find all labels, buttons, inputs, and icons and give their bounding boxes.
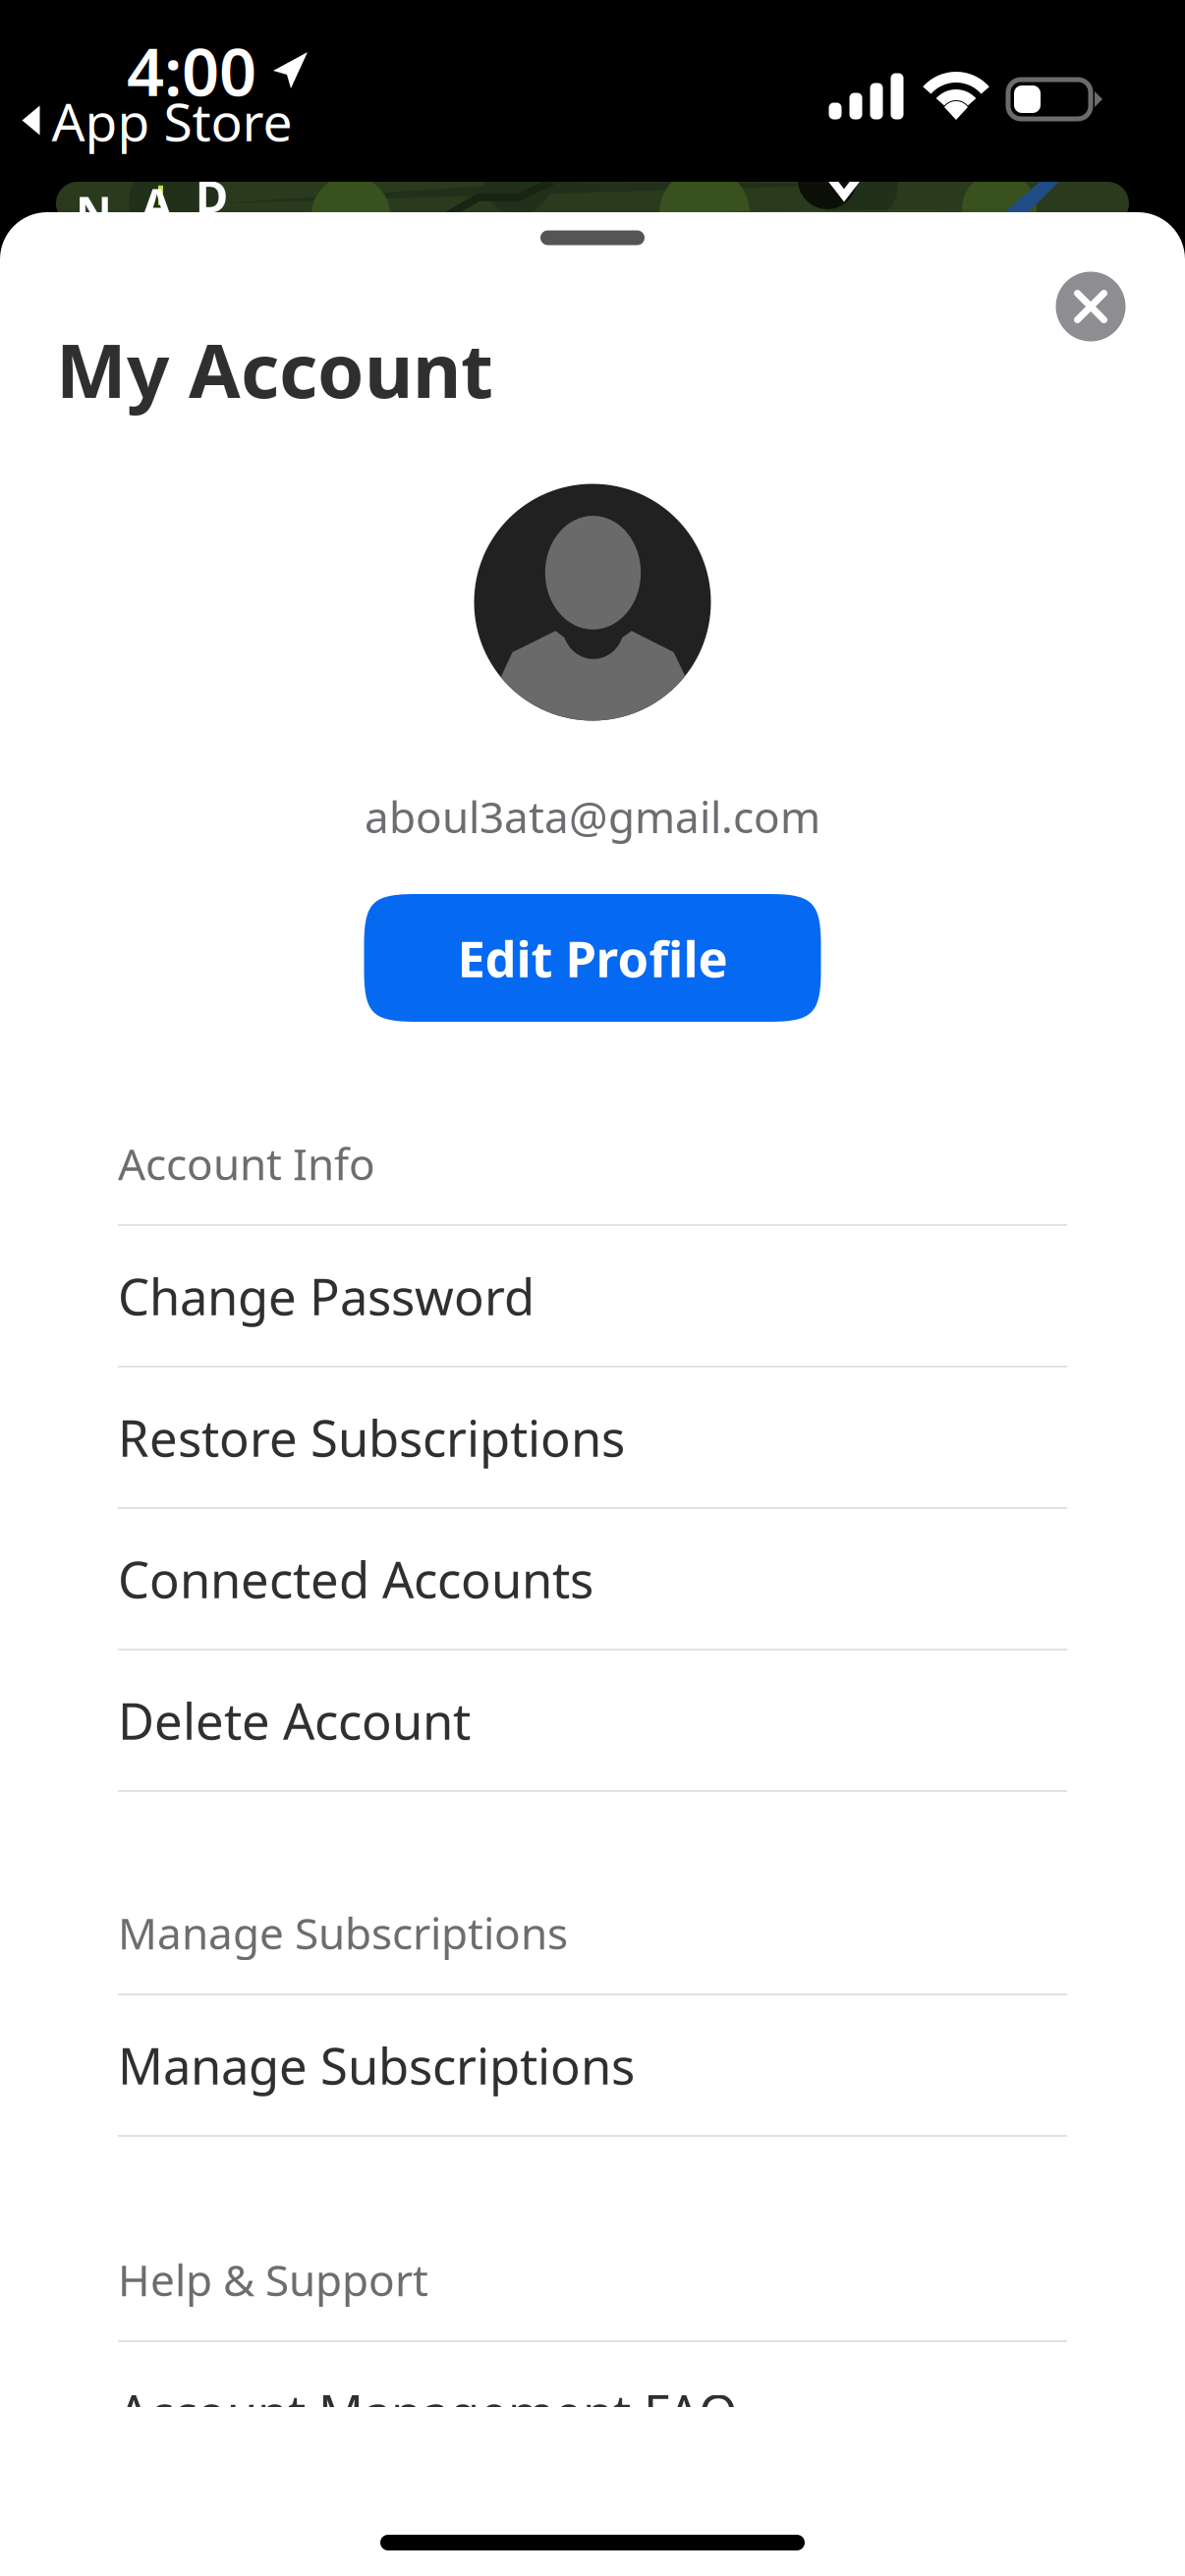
staticText: App Store <box>52 86 292 156</box>
button[interactable]: Close <box>1044 259 1138 354</box>
staticText: My Account <box>56 319 493 418</box>
staticText: Change Password <box>118 1263 535 1329</box>
staticText: Edit Profile <box>457 925 728 991</box>
staticText: Manage Subscriptions <box>118 2032 635 2098</box>
staticText: aboul3ata@gmail.com <box>365 788 820 845</box>
button[interactable]: Connected Accounts <box>118 1509 1067 1649</box>
staticText: Connected Accounts <box>118 1546 593 1612</box>
button[interactable]: Account Management FAQ <box>118 2342 1067 2482</box>
button[interactable]: Delete Account <box>118 1651 1067 1790</box>
staticText: Manage Subscriptions <box>118 1904 568 1961</box>
staticText: Account Info <box>118 1135 375 1192</box>
button[interactable]: Manage Subscriptions <box>118 1995 1067 2135</box>
button[interactable]: Edit Profile <box>364 894 821 1022</box>
staticText: N <box>76 182 112 241</box>
staticText: Account Management FAQ <box>118 2379 738 2445</box>
staticText: A <box>141 174 172 233</box>
button[interactable]: Restore Subscriptions <box>118 1368 1067 1507</box>
staticText: 4:00 <box>127 27 256 114</box>
staticText: Restore Subscriptions <box>118 1404 625 1470</box>
staticText: Help & Support <box>118 2251 428 2308</box>
staticText: D <box>196 166 228 225</box>
button[interactable]: Change Password <box>118 1226 1067 1366</box>
staticText: Delete Account <box>118 1687 471 1753</box>
